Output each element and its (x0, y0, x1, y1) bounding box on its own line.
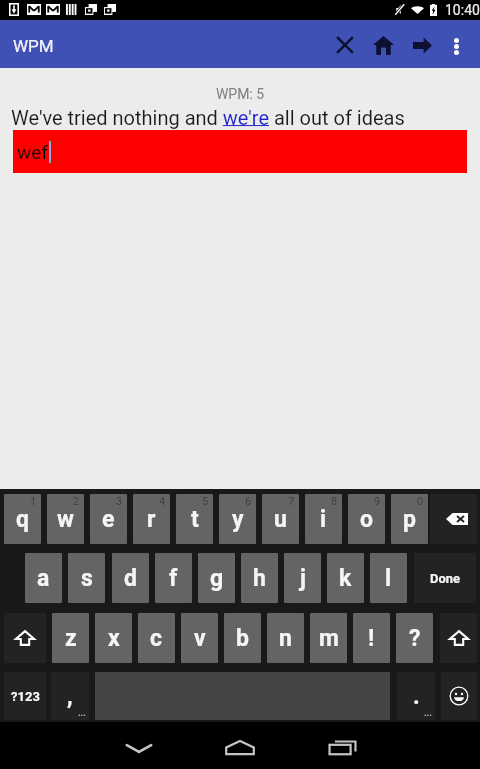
button[interactable]: p (391, 494, 428, 544)
button[interactable]: Shift (440, 613, 477, 663)
button[interactable]: Hide keyboard (108, 722, 170, 769)
staticText: Done (430, 571, 461, 586)
button[interactable]: . (397, 672, 435, 720)
staticText: , (67, 683, 73, 710)
button[interactable]: h (241, 553, 278, 603)
button[interactable]: v (181, 613, 218, 663)
button[interactable]: l (370, 553, 407, 603)
staticText: g (210, 565, 224, 592)
staticText: u (274, 506, 287, 533)
button[interactable]: ? (396, 613, 433, 663)
button[interactable]: u (262, 494, 299, 544)
staticText: p (403, 506, 416, 533)
staticText: 4 (159, 495, 166, 508)
staticText: w (57, 506, 74, 533)
button[interactable]: , (51, 672, 89, 720)
staticText: . (413, 683, 420, 710)
staticText: r (147, 506, 156, 533)
button[interactable]: ! (353, 613, 390, 663)
staticText: 2 (73, 495, 80, 508)
staticText: 8 (331, 495, 338, 508)
button[interactable]: Next (401, 20, 441, 68)
staticText: e (102, 506, 115, 533)
button[interactable]: a (25, 553, 62, 603)
staticText: a (37, 565, 50, 592)
button[interactable]: k (327, 553, 364, 603)
button[interactable]: Home (364, 20, 404, 68)
staticText: i (320, 506, 327, 533)
staticText: h (253, 565, 266, 592)
button[interactable]: f (155, 553, 192, 603)
staticText: m (319, 625, 339, 652)
button[interactable]: Close (321, 20, 369, 68)
button[interactable]: More options (438, 20, 476, 68)
staticText: 5 (202, 495, 209, 508)
staticText: ? (409, 625, 421, 652)
button[interactable]: b (224, 613, 261, 663)
button[interactable]: q (4, 494, 41, 544)
button[interactable]: t (176, 494, 213, 544)
button[interactable]: Emoji (441, 672, 477, 720)
button[interactable]: Recent apps (311, 722, 373, 769)
staticText: j (300, 565, 306, 592)
button[interactable]: w (47, 494, 84, 544)
staticText: k (339, 565, 352, 592)
button[interactable]: wef (13, 130, 467, 173)
staticText: l (385, 565, 392, 592)
staticText: ... (78, 708, 86, 719)
button[interactable]: o (348, 494, 385, 544)
staticText: s (81, 565, 93, 592)
staticText: 7 (288, 495, 295, 508)
staticText: y (232, 506, 244, 533)
button[interactable]: ?123 (4, 672, 46, 720)
button[interactable]: Done (414, 553, 476, 603)
staticText: We've tried nothing and we're all out of… (11, 106, 405, 129)
staticText: WPM: 5 (0, 86, 480, 102)
button[interactable]: d (112, 553, 149, 603)
button[interactable]: i (305, 494, 342, 544)
staticText: d (124, 565, 137, 592)
button[interactable]: c (138, 613, 175, 663)
staticText: 1 (30, 495, 37, 508)
button[interactable]: e (90, 494, 127, 544)
staticText: v (194, 625, 206, 652)
staticText: 10:40 (445, 2, 480, 18)
button[interactable]: m (310, 613, 347, 663)
staticText: f (169, 565, 178, 592)
staticText: 9 (374, 495, 381, 508)
button[interactable]: Home (209, 722, 271, 769)
staticText: q (16, 506, 29, 533)
staticText: ! (368, 625, 375, 652)
staticText: ... (424, 708, 432, 719)
button[interactable]: j (284, 553, 321, 603)
button[interactable]: z (52, 613, 89, 663)
button[interactable]: n (267, 613, 304, 663)
staticText: 6 (245, 495, 252, 508)
staticText: n (279, 625, 292, 652)
staticText: ?123 (11, 689, 40, 704)
button[interactable]: Backspace (430, 494, 477, 544)
staticText: t (191, 506, 199, 533)
button[interactable]: s (68, 553, 105, 603)
button[interactable]: g (198, 553, 235, 603)
staticText: wef (17, 141, 48, 163)
staticText: 0 (417, 495, 424, 508)
staticText: b (236, 625, 249, 652)
staticText: c (150, 625, 163, 652)
staticText: z (65, 625, 77, 652)
button[interactable]: r (133, 494, 170, 544)
button[interactable]: x (95, 613, 132, 663)
button[interactable]: y (219, 494, 256, 544)
button[interactable]: Shift (4, 613, 46, 663)
staticText: o (360, 506, 374, 533)
staticText: x (108, 625, 120, 652)
staticText: WPM (13, 36, 54, 56)
staticText: 3 (116, 495, 123, 508)
